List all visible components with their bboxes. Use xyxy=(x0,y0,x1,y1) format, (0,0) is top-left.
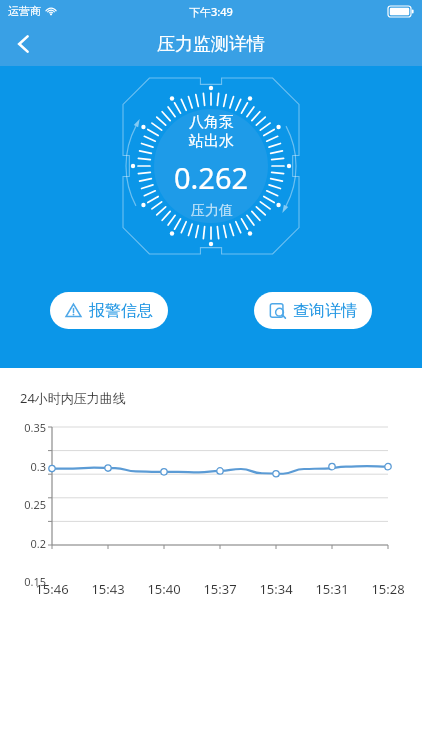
staticText: 15:37 xyxy=(196,580,244,598)
staticText: 0.3 xyxy=(0,459,46,474)
button[interactable]: 报警信息 xyxy=(50,292,168,329)
staticText: 15:43 xyxy=(84,580,132,598)
staticText: 八角泵 xyxy=(189,113,234,132)
button[interactable]: 查询详情 xyxy=(254,292,372,329)
staticText: 0.25 xyxy=(0,497,46,512)
button[interactable]: Back xyxy=(0,22,48,66)
staticText: 0.262 xyxy=(174,158,249,197)
staticText: 15:34 xyxy=(252,580,300,598)
staticText: 0.2 xyxy=(0,536,46,551)
staticText: 0.35 xyxy=(0,420,46,435)
staticText: 0.15 xyxy=(0,574,46,589)
staticText: 15:46 xyxy=(28,580,76,598)
staticText: 15:31 xyxy=(308,580,356,598)
staticText: 查询详情 xyxy=(293,301,357,321)
staticText: 站出水 xyxy=(189,132,234,151)
staticText: 压力监测详情 xyxy=(157,33,265,56)
staticText: 24小时内压力曲线 xyxy=(20,389,126,407)
staticText: 15:40 xyxy=(140,580,188,598)
staticText: 下午3:49 xyxy=(189,4,233,19)
staticText: 15:28 xyxy=(364,580,412,598)
staticText: 报警信息 xyxy=(89,301,153,321)
staticText: 运营商 xyxy=(8,4,41,18)
staticText: 压力值 xyxy=(191,202,233,220)
